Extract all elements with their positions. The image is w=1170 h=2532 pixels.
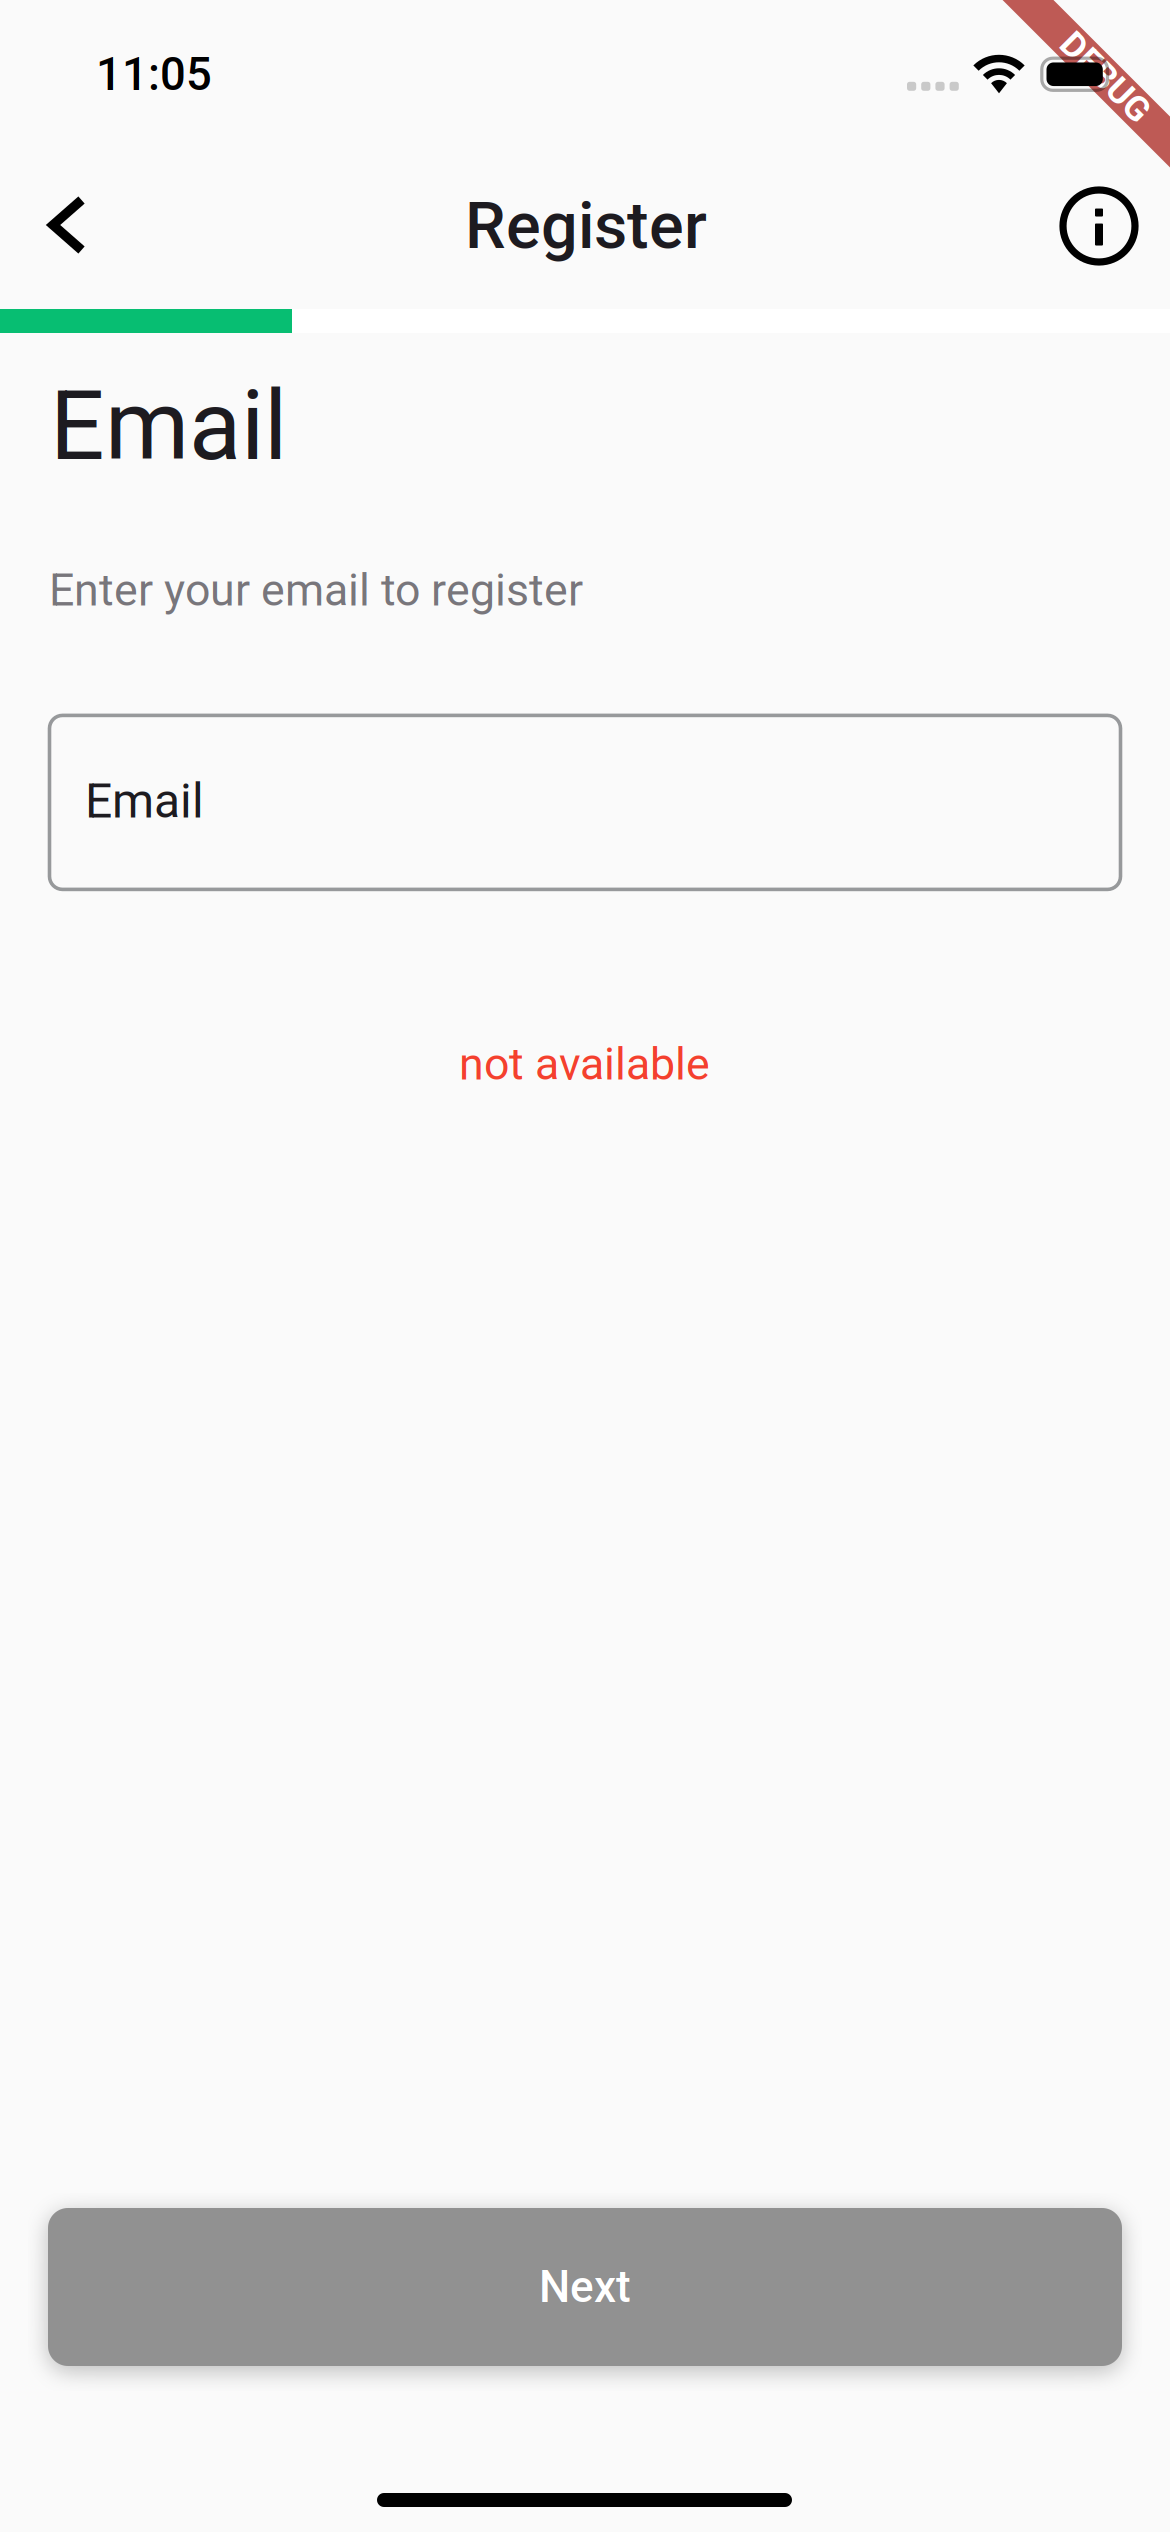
staticText: Next xyxy=(539,2261,631,2313)
staticText: Email xyxy=(85,773,204,829)
staticText: DEBUG xyxy=(1052,51,1164,91)
staticText: Register xyxy=(465,188,707,264)
staticText: Enter your email to register xyxy=(49,564,583,616)
staticText: 11:05 xyxy=(96,48,212,101)
button[interactable]: Back xyxy=(19,177,115,273)
button[interactable]: Next xyxy=(48,2208,1122,2366)
staticText: Email xyxy=(50,370,287,482)
button[interactable]: Information xyxy=(1051,178,1147,274)
staticText: not available xyxy=(459,1038,710,1090)
